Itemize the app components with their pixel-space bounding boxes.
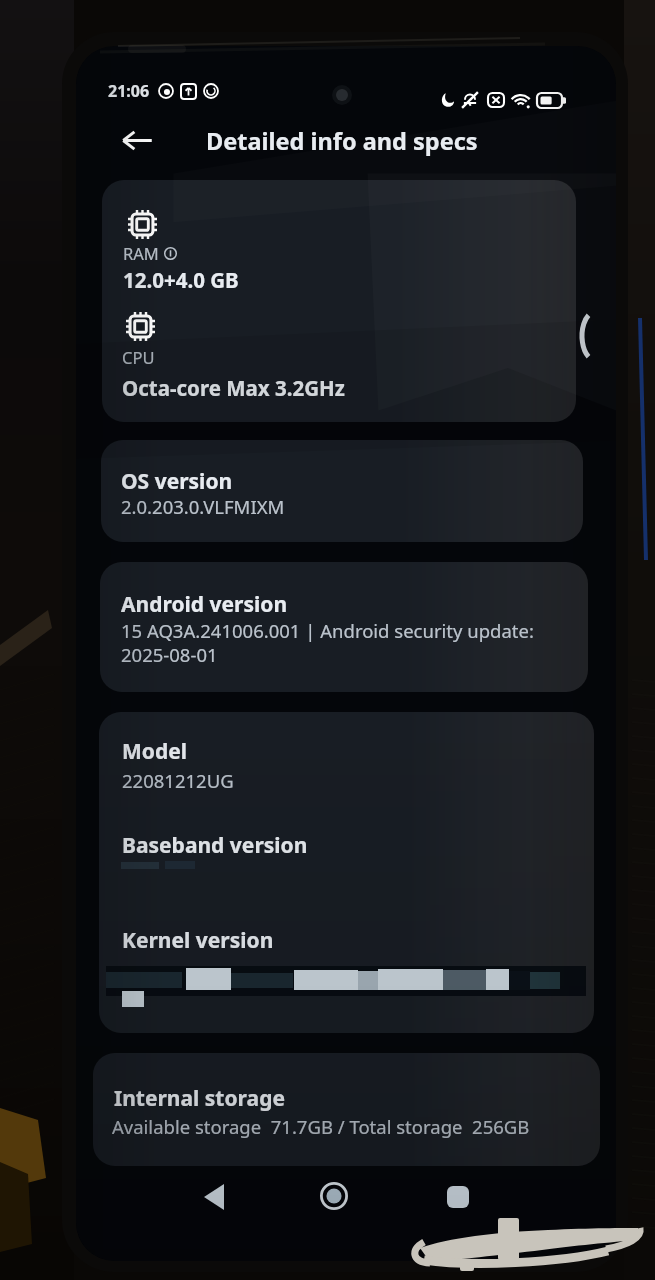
staticText: OS version [121,467,233,496]
staticText: Model [122,737,187,766]
staticText: 2.0.203.0.VLFMIXM [121,494,285,519]
button[interactable]: Recents [434,1173,482,1221]
button[interactable]: Internal storage [93,1053,600,1166]
button[interactable]: OS version [101,440,583,542]
staticText: Baseband version [122,831,308,860]
staticText: Available storage 71.7GB / Total storage… [112,1114,530,1139]
staticText: 15 AQ3A.241006.001 | Android security up… [121,618,534,667]
button[interactable]: Android version [100,562,588,692]
button[interactable]: Home [310,1172,358,1220]
button[interactable]: RAM [102,180,576,422]
staticText: 21:06 [108,80,150,102]
staticText: Octa-core Max 3.2GHz [122,374,345,402]
staticText: Detailed info and specs [206,125,478,157]
staticText: 12.0+4.0 GB [123,266,239,294]
button[interactable]: Back [190,1173,238,1221]
button[interactable]: Model [99,712,594,1033]
staticText: Kernel version [122,926,274,955]
staticText: RAM [123,242,159,264]
staticText: Android version [121,590,288,619]
staticText: Internal storage [114,1084,285,1113]
staticText: 22081212UG [122,768,234,793]
button[interactable]: Back [113,116,161,164]
staticText: CPU [122,346,155,368]
